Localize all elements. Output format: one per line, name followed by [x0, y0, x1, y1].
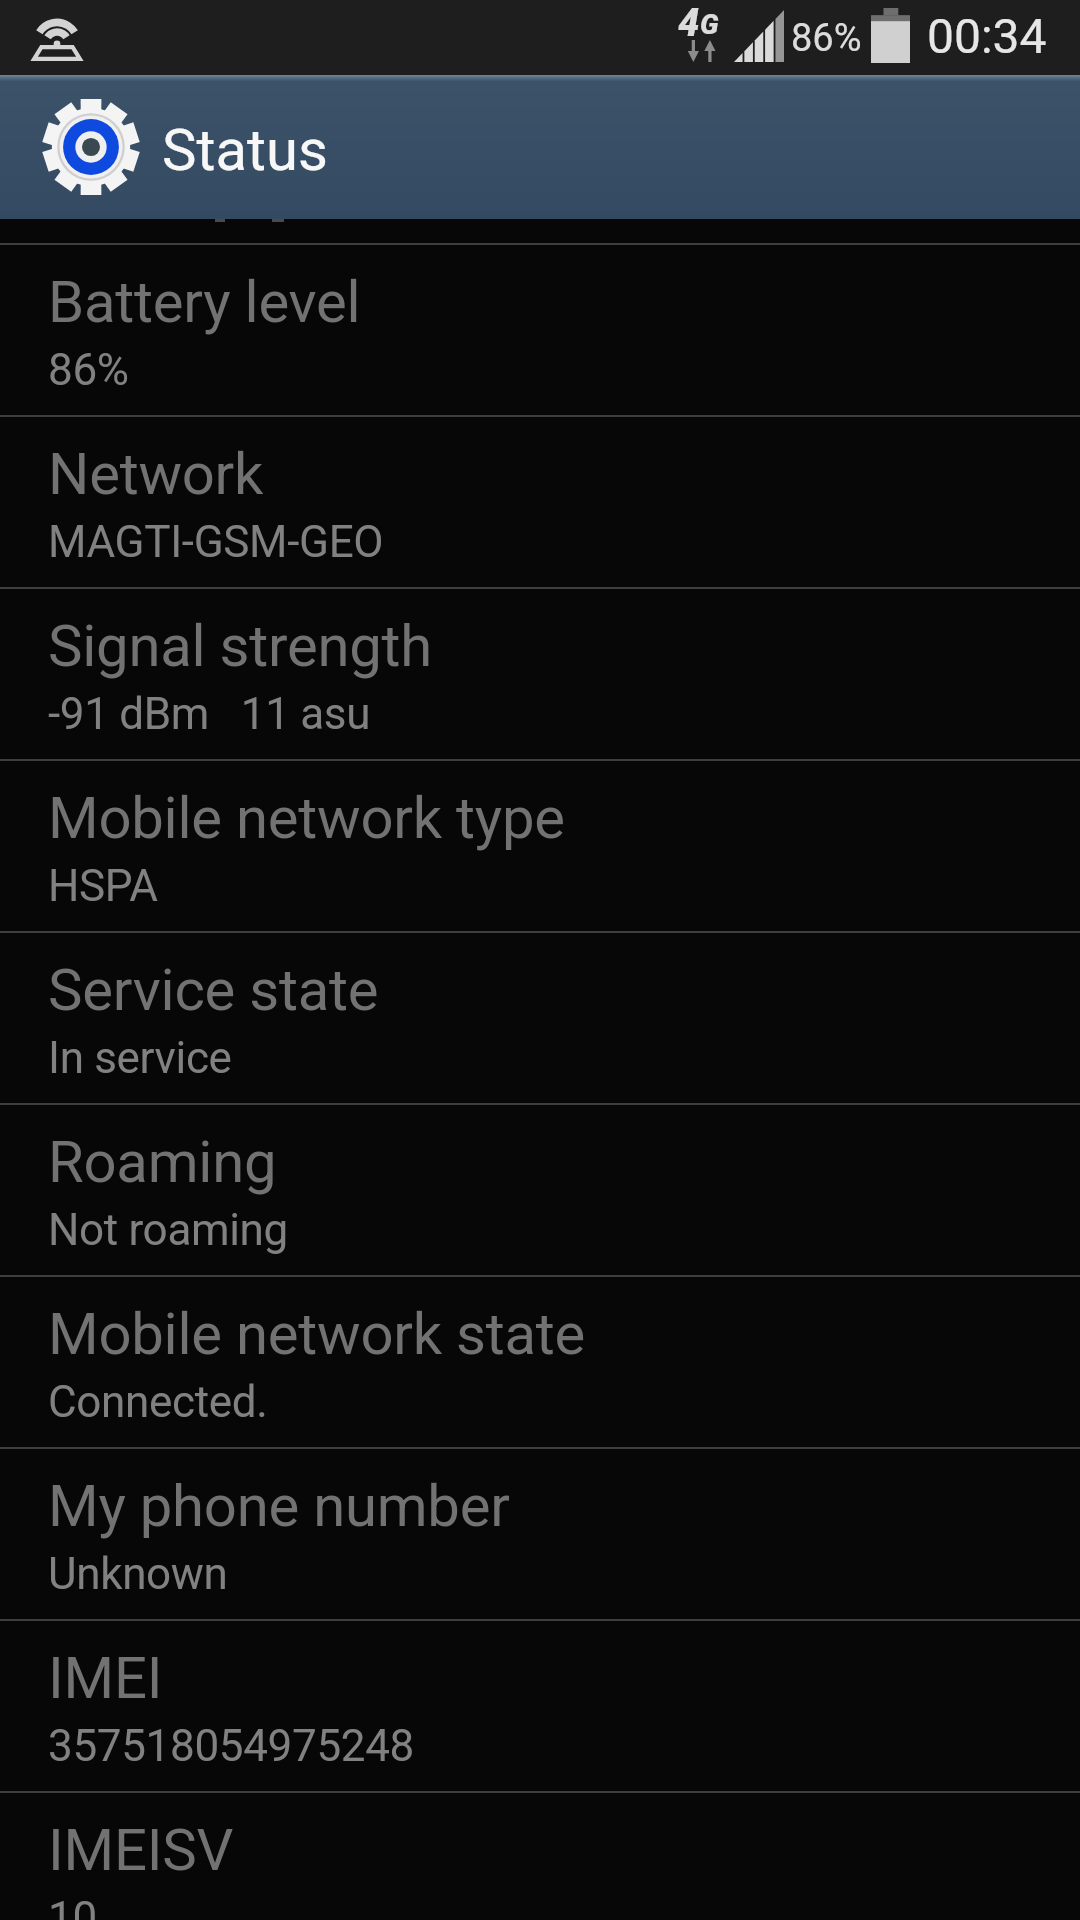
button[interactable]: Mobile network state	[0, 1277, 1080, 1447]
button[interactable]: My phone number	[0, 1449, 1080, 1619]
button[interactable]: Signal strength	[0, 589, 1080, 759]
staticText: IMEI	[48, 1644, 163, 1712]
staticText: In service	[48, 1032, 232, 1084]
staticText: Status	[162, 116, 328, 184]
staticText: G	[700, 8, 719, 41]
button[interactable]: Battery level	[0, 245, 1080, 415]
button[interactable]: IMEISV	[0, 1793, 1080, 1920]
button[interactable]: Service state	[0, 933, 1080, 1103]
other: Tethering active	[31, 11, 83, 63]
button[interactable]: Status	[0, 75, 1080, 219]
staticText: IMEISV	[48, 1816, 234, 1884]
staticText: 86%	[48, 344, 129, 396]
button[interactable]: Roaming	[0, 1105, 1080, 1275]
staticText: 4	[678, 1, 700, 46]
staticText: 357518054975248	[48, 1720, 414, 1772]
staticText: 00:34	[927, 8, 1047, 64]
staticText: HSPA	[48, 860, 158, 912]
staticText: Battery level	[48, 268, 361, 336]
staticText: Mobile network state	[48, 1300, 586, 1368]
staticText: 86%	[791, 16, 862, 61]
staticText: 10	[48, 1892, 97, 1920]
staticText: Roaming	[48, 1128, 277, 1196]
staticText: Connected.	[48, 1376, 268, 1428]
staticText: Signal strength	[48, 612, 432, 680]
button[interactable]: Network	[0, 417, 1080, 587]
staticText: -91 dBm 11 asu	[48, 688, 371, 740]
staticText: MAGTI-GSM-GEO	[48, 516, 384, 568]
button[interactable]: Mobile network type	[0, 761, 1080, 931]
staticText: Service state	[48, 956, 379, 1024]
staticText: Unknown	[48, 1548, 228, 1600]
staticText: Network	[48, 440, 264, 508]
button[interactable]: IMEI	[0, 1621, 1080, 1791]
staticText: My phone number	[48, 1472, 510, 1540]
staticText: Mobile network type	[48, 784, 565, 852]
staticText: Not roaming	[48, 1204, 288, 1256]
